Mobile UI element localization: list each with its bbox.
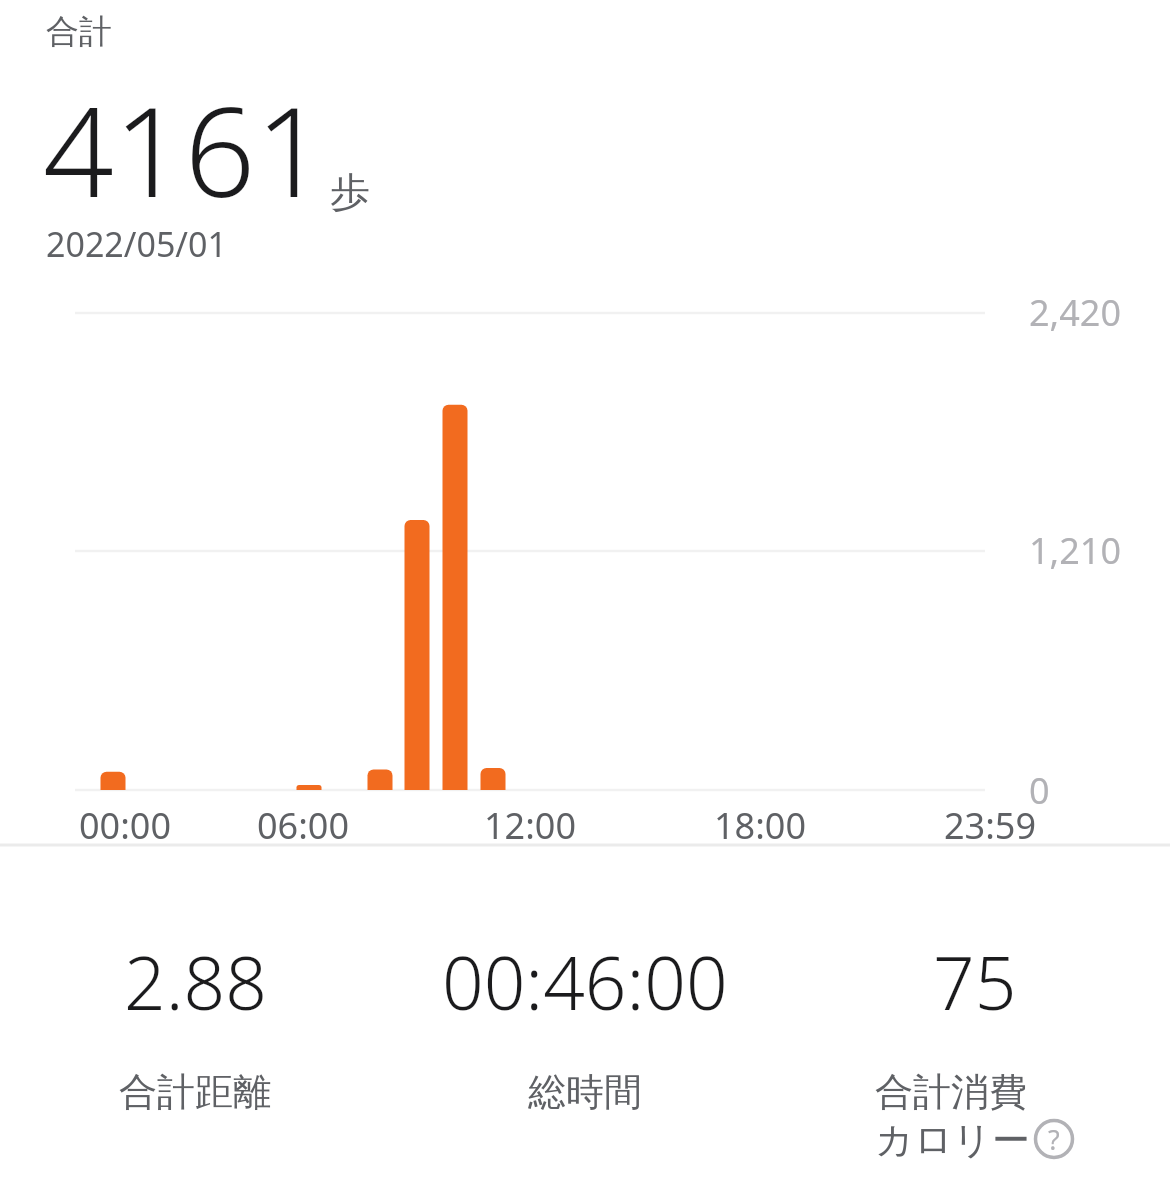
staticText: 0 bbox=[1029, 766, 1050, 815]
button[interactable]: 2.88 bbox=[0, 932, 390, 1116]
staticText: 00:00 bbox=[35, 801, 215, 850]
staticText: 合計消費 bbox=[875, 1068, 1027, 1116]
staticText: カロリー bbox=[875, 1116, 1030, 1164]
staticText: 総時間 bbox=[528, 1068, 642, 1116]
button[interactable]: 00:46:00 bbox=[390, 932, 780, 1116]
button[interactable]: Help about total calories burned bbox=[1033, 1118, 1075, 1160]
staticText: 2,420 bbox=[1029, 288, 1122, 337]
staticText: 2022/05/01 bbox=[46, 221, 227, 267]
staticText: ? bbox=[1048, 1121, 1060, 1158]
staticText: 00:46:00 bbox=[442, 932, 728, 1031]
staticText: 12:00 bbox=[440, 801, 620, 850]
button[interactable]: 75 bbox=[780, 932, 1170, 1164]
staticText: 4161 bbox=[43, 64, 327, 233]
staticText: 06:00 bbox=[213, 801, 393, 850]
staticText: 歩 bbox=[330, 167, 370, 217]
staticText: 1,210 bbox=[1029, 526, 1122, 575]
staticText: 合計 bbox=[46, 11, 112, 53]
staticText: 75 bbox=[933, 932, 1017, 1031]
staticText: 18:00 bbox=[670, 801, 850, 850]
staticText: 23:59 bbox=[900, 801, 1080, 850]
staticText: 合計距離 bbox=[119, 1068, 271, 1116]
staticText: 2.88 bbox=[124, 932, 267, 1031]
